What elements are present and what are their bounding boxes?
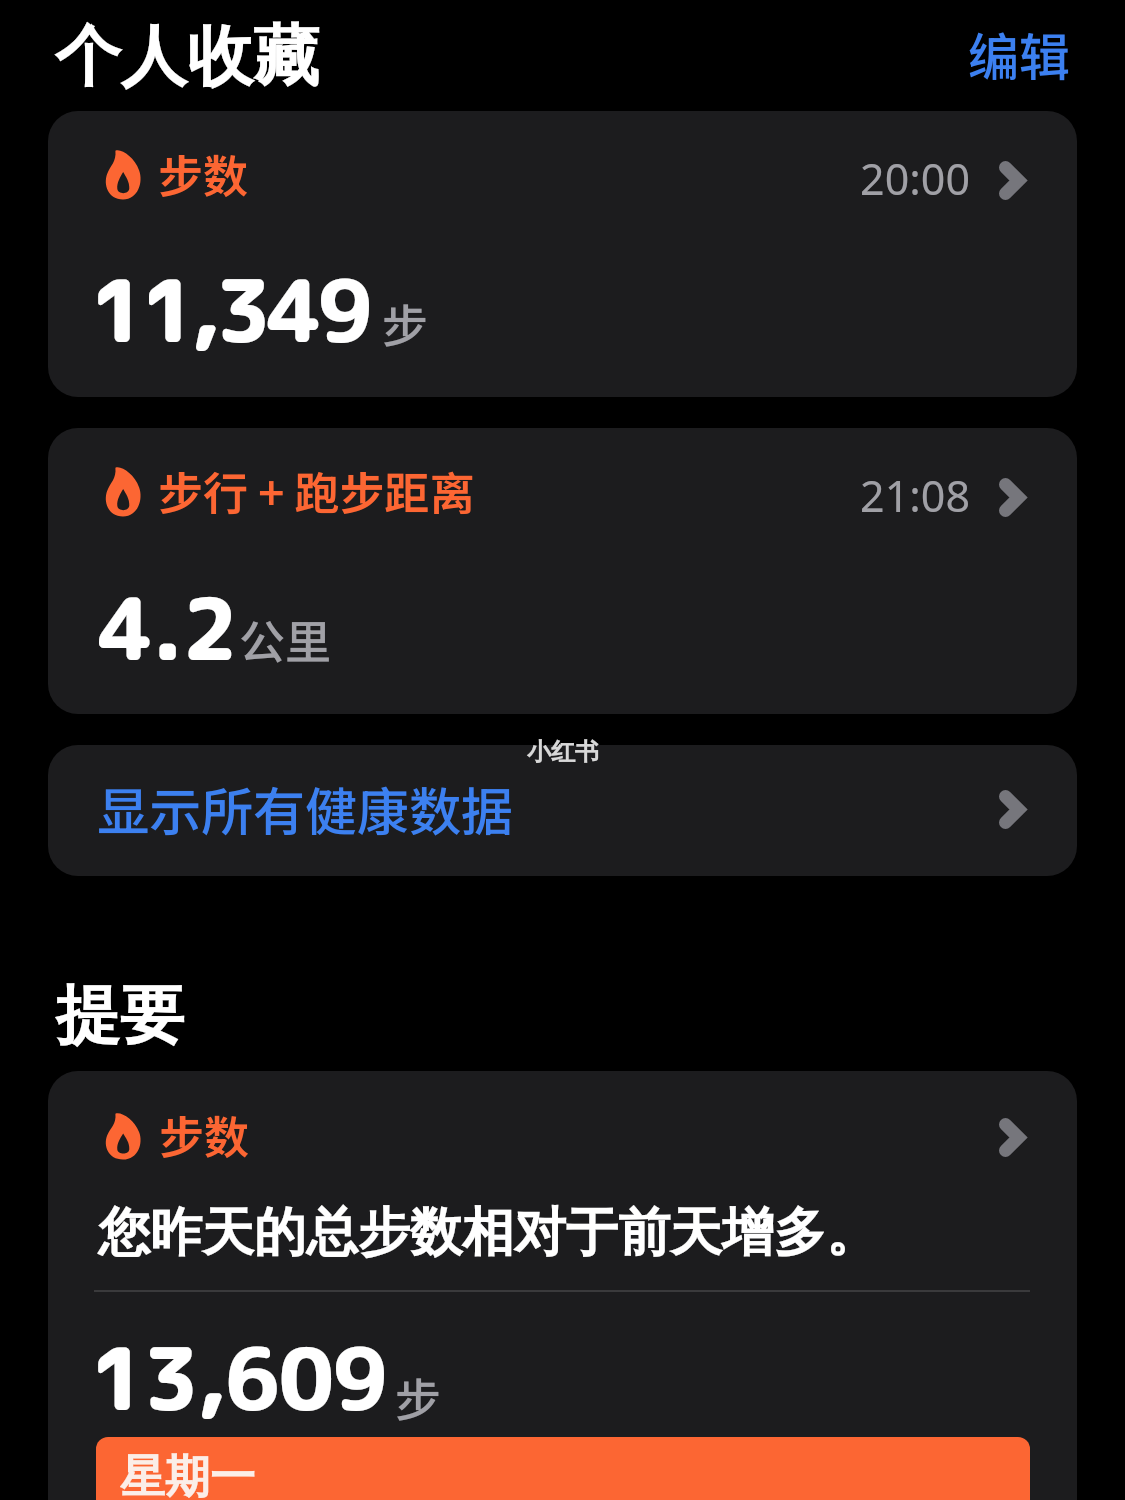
staticText: 编辑 — [968, 17, 1071, 91]
button[interactable]: 显示所有健康数据 — [48, 745, 1077, 876]
staticText: 步数 — [159, 1102, 250, 1167]
staticText: 4.2 — [98, 569, 237, 688]
staticText: 步 — [395, 1364, 441, 1431]
button[interactable]: 步行 + 跑步距离 21:08 — [48, 428, 1077, 714]
staticText: 星期一 — [120, 1449, 255, 1500]
staticText: 您昨天的总步数相对于前天增多。 — [98, 1200, 878, 1266]
staticText: 公里 — [239, 606, 331, 673]
staticText: 20:00 — [748, 149, 970, 208]
staticText: 小红书 — [527, 737, 599, 767]
button[interactable]: 步数 — [48, 1071, 1077, 1500]
staticText: 个人收藏 — [55, 15, 319, 98]
button[interactable]: 编辑 — [954, 7, 1085, 101]
staticText: 步 — [382, 290, 428, 357]
staticText: 11,349 — [90, 251, 369, 370]
staticText: 步行 + 跑步距离 — [158, 458, 475, 523]
button[interactable]: 步数 20:00 — [48, 111, 1077, 397]
staticText: 13,609 — [90, 1319, 387, 1438]
staticText: 提要 — [56, 975, 184, 1056]
staticText: 显示所有健康数据 — [97, 771, 514, 846]
staticText: 21:08 — [748, 466, 970, 525]
staticText: 步数 — [158, 141, 249, 206]
